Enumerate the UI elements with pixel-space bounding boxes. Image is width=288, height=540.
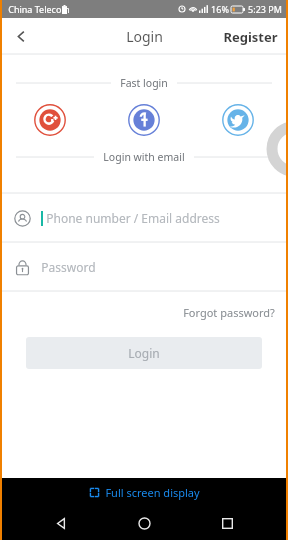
staticText: Full screen display xyxy=(105,485,200,500)
button[interactable]: Forgot password? xyxy=(170,300,288,325)
staticText: 5:23 PM xyxy=(248,3,282,15)
staticText: Phone number / Email address xyxy=(46,210,220,226)
button[interactable]: Full screen display xyxy=(0,478,288,506)
staticText: Login with email xyxy=(103,150,185,164)
staticText: Password xyxy=(41,259,96,275)
button[interactable]: Sign in with Google xyxy=(34,104,66,136)
staticText: Login xyxy=(126,27,163,46)
button[interactable]: Sign in with Facebook xyxy=(128,104,160,136)
staticText: Login xyxy=(128,345,160,361)
button[interactable]: Register xyxy=(213,22,288,52)
button[interactable]: Back xyxy=(0,18,42,55)
button[interactable]: Sign in with Twitter xyxy=(222,104,254,136)
button[interactable]: Password xyxy=(0,243,288,291)
staticText: Forgot password? xyxy=(183,305,275,320)
button[interactable]: Home xyxy=(122,506,166,540)
staticText: Fast login xyxy=(120,76,168,90)
staticText: 16% xyxy=(211,3,229,15)
staticText: China Telecom xyxy=(8,3,70,15)
button[interactable]: Login xyxy=(26,337,262,369)
button[interactable]: Recent apps xyxy=(205,506,249,540)
button[interactable]: Phone number / Email address xyxy=(0,194,288,242)
button[interactable]: Back xyxy=(39,506,83,540)
staticText: Register xyxy=(223,28,278,46)
